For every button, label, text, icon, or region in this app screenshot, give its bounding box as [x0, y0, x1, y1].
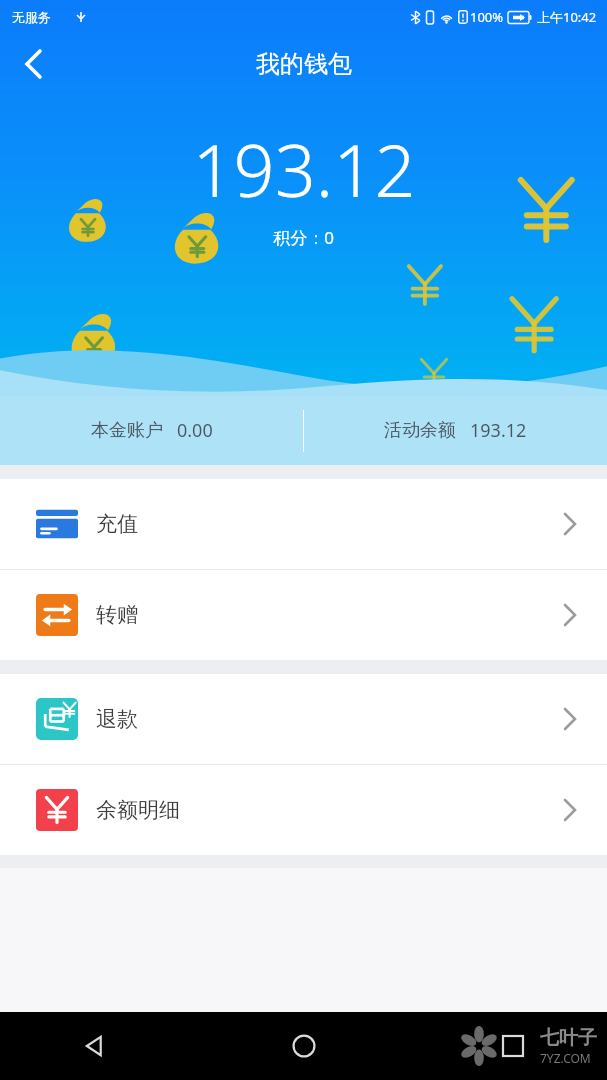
button[interactable]: Top up — [0, 479, 607, 569]
staticText: 积分：0 — [273, 226, 334, 249]
staticText: 余额明细 — [96, 797, 180, 823]
button[interactable]: Back — [70, 1022, 118, 1070]
staticText: 我的钱包 — [256, 49, 352, 79]
staticText: 0.00 — [177, 418, 213, 443]
staticText: 193.12 — [470, 418, 527, 443]
staticText: 无服务 — [12, 9, 51, 25]
staticText: 上午10:42 — [537, 8, 597, 26]
button[interactable]: Balance details — [0, 765, 607, 855]
button[interactable]: Transfer — [0, 570, 607, 660]
staticText: 七叶子 — [540, 1026, 597, 1050]
button[interactable]: Back — [6, 37, 60, 91]
staticText: 100% — [470, 8, 504, 26]
button[interactable]: Recents — [489, 1022, 537, 1070]
staticText: 退款 — [96, 706, 138, 732]
staticText: 本金账户 — [91, 419, 163, 442]
staticText: 充值 — [96, 511, 138, 537]
staticText: 活动余额 — [384, 419, 456, 442]
button[interactable]: Home — [280, 1022, 328, 1070]
button[interactable]: Refund — [0, 674, 607, 764]
staticText: 转赠 — [96, 602, 138, 628]
staticText: 7YZ.COM — [540, 1050, 591, 1066]
staticText: 193.12 — [192, 120, 416, 218]
